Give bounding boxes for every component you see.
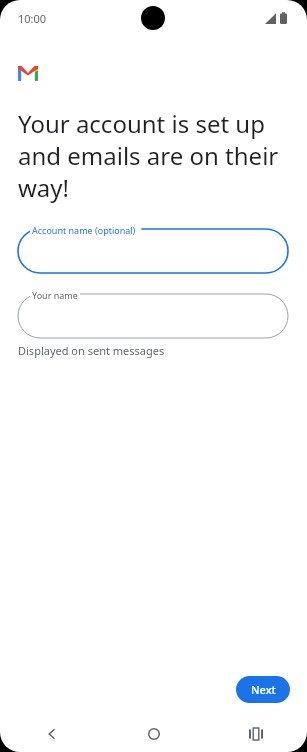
button[interactable]: Your name <box>18 294 288 338</box>
button[interactable]: Home <box>103 715 205 752</box>
button[interactable]: Next <box>236 676 290 703</box>
button[interactable]: Recent apps <box>205 715 307 752</box>
button[interactable]: Account name (optional) <box>18 229 288 273</box>
button[interactable]: Back <box>0 715 103 752</box>
staticText: Next <box>251 682 276 697</box>
staticText: Your account is set up and emails are on… <box>18 107 285 204</box>
staticText: Account name (optional) <box>32 224 136 236</box>
staticText: Displayed on sent messages <box>18 343 165 358</box>
staticText: 10:00 <box>18 11 47 26</box>
staticText: Your name <box>32 289 78 301</box>
